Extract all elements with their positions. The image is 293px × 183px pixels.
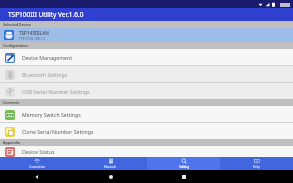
button[interactable]: Memory Switch Settings [0, 106, 293, 122]
button[interactable]: Help [220, 157, 293, 170]
staticText: Memory Switch Settings [22, 111, 81, 118]
button[interactable]: Setting [147, 157, 220, 170]
staticText: Clone Serial Number Settings [22, 128, 94, 135]
staticText: TSP143IIILAN [19, 30, 49, 36]
button[interactable]: Connection [0, 157, 74, 170]
staticText: Bluetooth Settings [22, 71, 68, 78]
staticText: Help [253, 165, 260, 169]
button[interactable]: USB Serial Number Settings [0, 83, 293, 99]
staticText: TSP100III Utility Ver.1.6.0 [8, 10, 84, 19]
button[interactable]: Back [33, 173, 41, 181]
staticText: Selected Device [3, 22, 31, 27]
button[interactable]: Device Status [0, 146, 293, 157]
staticText: Connection [29, 165, 46, 169]
staticText: Setting [179, 165, 189, 169]
button[interactable]: Recents [180, 173, 188, 181]
button[interactable]: Device Management [0, 49, 293, 65]
staticText: Contents [3, 100, 20, 105]
staticText: USB Serial Number Settings [22, 88, 90, 95]
staticText: Device Status [22, 148, 55, 155]
button[interactable]: Clone Serial Number Settings [0, 123, 293, 139]
button[interactable]: Bluetooth Settings [0, 66, 293, 82]
staticText: Device Management [22, 54, 73, 61]
staticText: TCP://192.168.1.2 [19, 37, 46, 41]
staticText: Appendix [3, 140, 20, 145]
button[interactable]: TSP143IIILAN [0, 28, 293, 42]
staticText: Manuals [104, 165, 117, 169]
button[interactable]: Home [107, 173, 115, 181]
staticText: Configuration [3, 43, 28, 48]
button[interactable]: Manuals [74, 157, 147, 170]
